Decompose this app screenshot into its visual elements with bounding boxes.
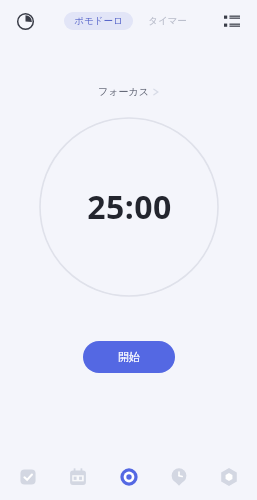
button[interactable]: Pomodoro [107, 455, 151, 499]
button[interactable]: タイマー [142, 12, 193, 30]
button[interactable]: Profile [207, 455, 251, 499]
staticText: 開始 [118, 350, 140, 364]
staticText: タイマー [148, 15, 187, 27]
button[interactable]: フォーカス [92, 83, 165, 100]
button[interactable]: Settings [218, 7, 246, 35]
button[interactable]: Tracking [157, 455, 201, 499]
button[interactable]: ポモドーロ [64, 12, 133, 30]
button[interactable]: 開始 [83, 341, 175, 373]
button[interactable]: Tasks [6, 455, 50, 499]
staticText: ポモドーロ [74, 15, 123, 27]
staticText: 25:00 [87, 185, 172, 229]
button[interactable]: History [11, 7, 39, 35]
button[interactable]: Calendar [56, 455, 100, 499]
staticText: フォーカス [98, 85, 149, 98]
